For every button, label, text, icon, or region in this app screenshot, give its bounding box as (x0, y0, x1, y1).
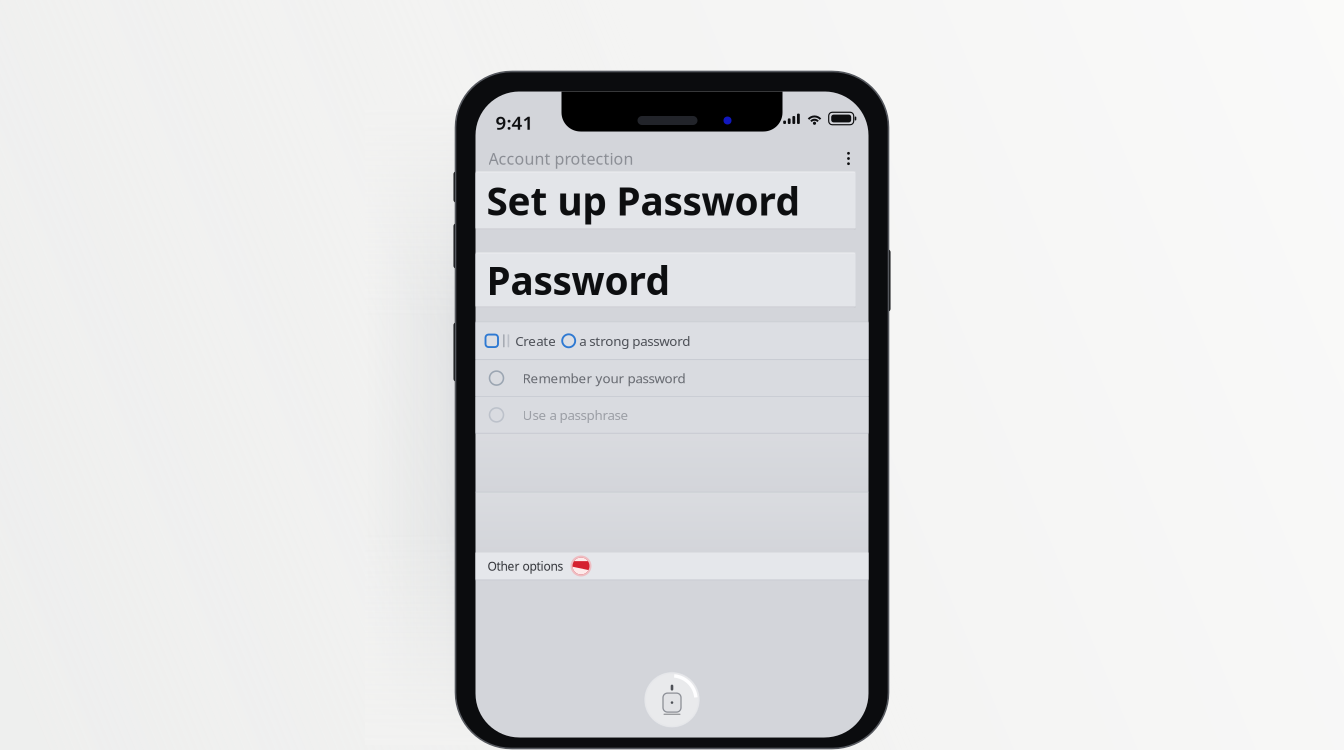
button[interactable]: Unlock (643, 671, 700, 728)
staticText: Password (486, 254, 669, 306)
button[interactable]: More options (842, 151, 854, 165)
staticText: Remember your password (522, 369, 685, 387)
staticText: Use a passphrase (522, 406, 628, 424)
button[interactable]: Use a passphrase (475, 397, 868, 433)
staticText: Create (515, 332, 556, 350)
button[interactable]: Create (475, 322, 868, 359)
staticText: 9:41 (495, 110, 533, 135)
staticText: Set up Password (486, 175, 799, 226)
button[interactable]: Remember your password (475, 360, 868, 396)
staticText: Other options (487, 558, 563, 574)
button[interactable]: Other options (475, 552, 868, 579)
staticText: a strong password (579, 332, 690, 350)
staticText: Account protection (488, 148, 633, 169)
